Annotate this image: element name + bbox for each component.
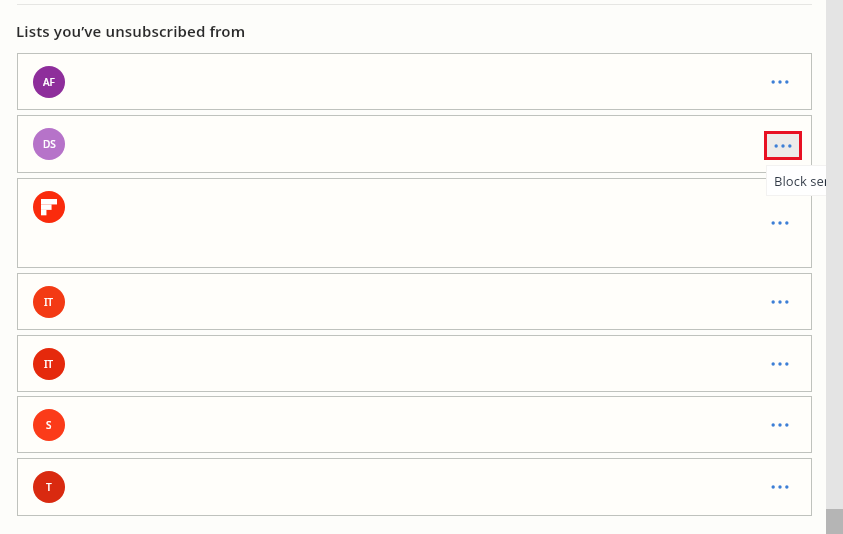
button[interactable]: More actions (760, 351, 800, 377)
staticText: T (46, 480, 52, 494)
staticText: IT (44, 357, 54, 371)
button[interactable]: DS (17, 115, 812, 173)
button[interactable]: More actions (764, 131, 802, 160)
button[interactable]: More actions (760, 210, 800, 236)
staticText: S (46, 418, 52, 432)
staticText: IT (44, 295, 54, 309)
button[interactable]: IT (17, 335, 812, 392)
button[interactable]: AF (17, 53, 812, 110)
button[interactable]: More actions (760, 289, 800, 315)
staticText: DS (43, 137, 56, 151)
button[interactable]: IT (17, 273, 812, 330)
button[interactable]: More actions (760, 412, 800, 438)
staticText: Block sende (774, 172, 843, 190)
button[interactable]: More actions (760, 474, 800, 500)
staticText: Lists you’ve unsubscribed from (16, 21, 246, 41)
button[interactable]: T (17, 458, 812, 516)
staticText: AF (43, 75, 55, 89)
button[interactable]: More actions (17, 178, 812, 268)
button[interactable]: S (17, 396, 812, 453)
button[interactable]: More actions (760, 69, 800, 95)
button[interactable]: More actions (760, 131, 800, 157)
